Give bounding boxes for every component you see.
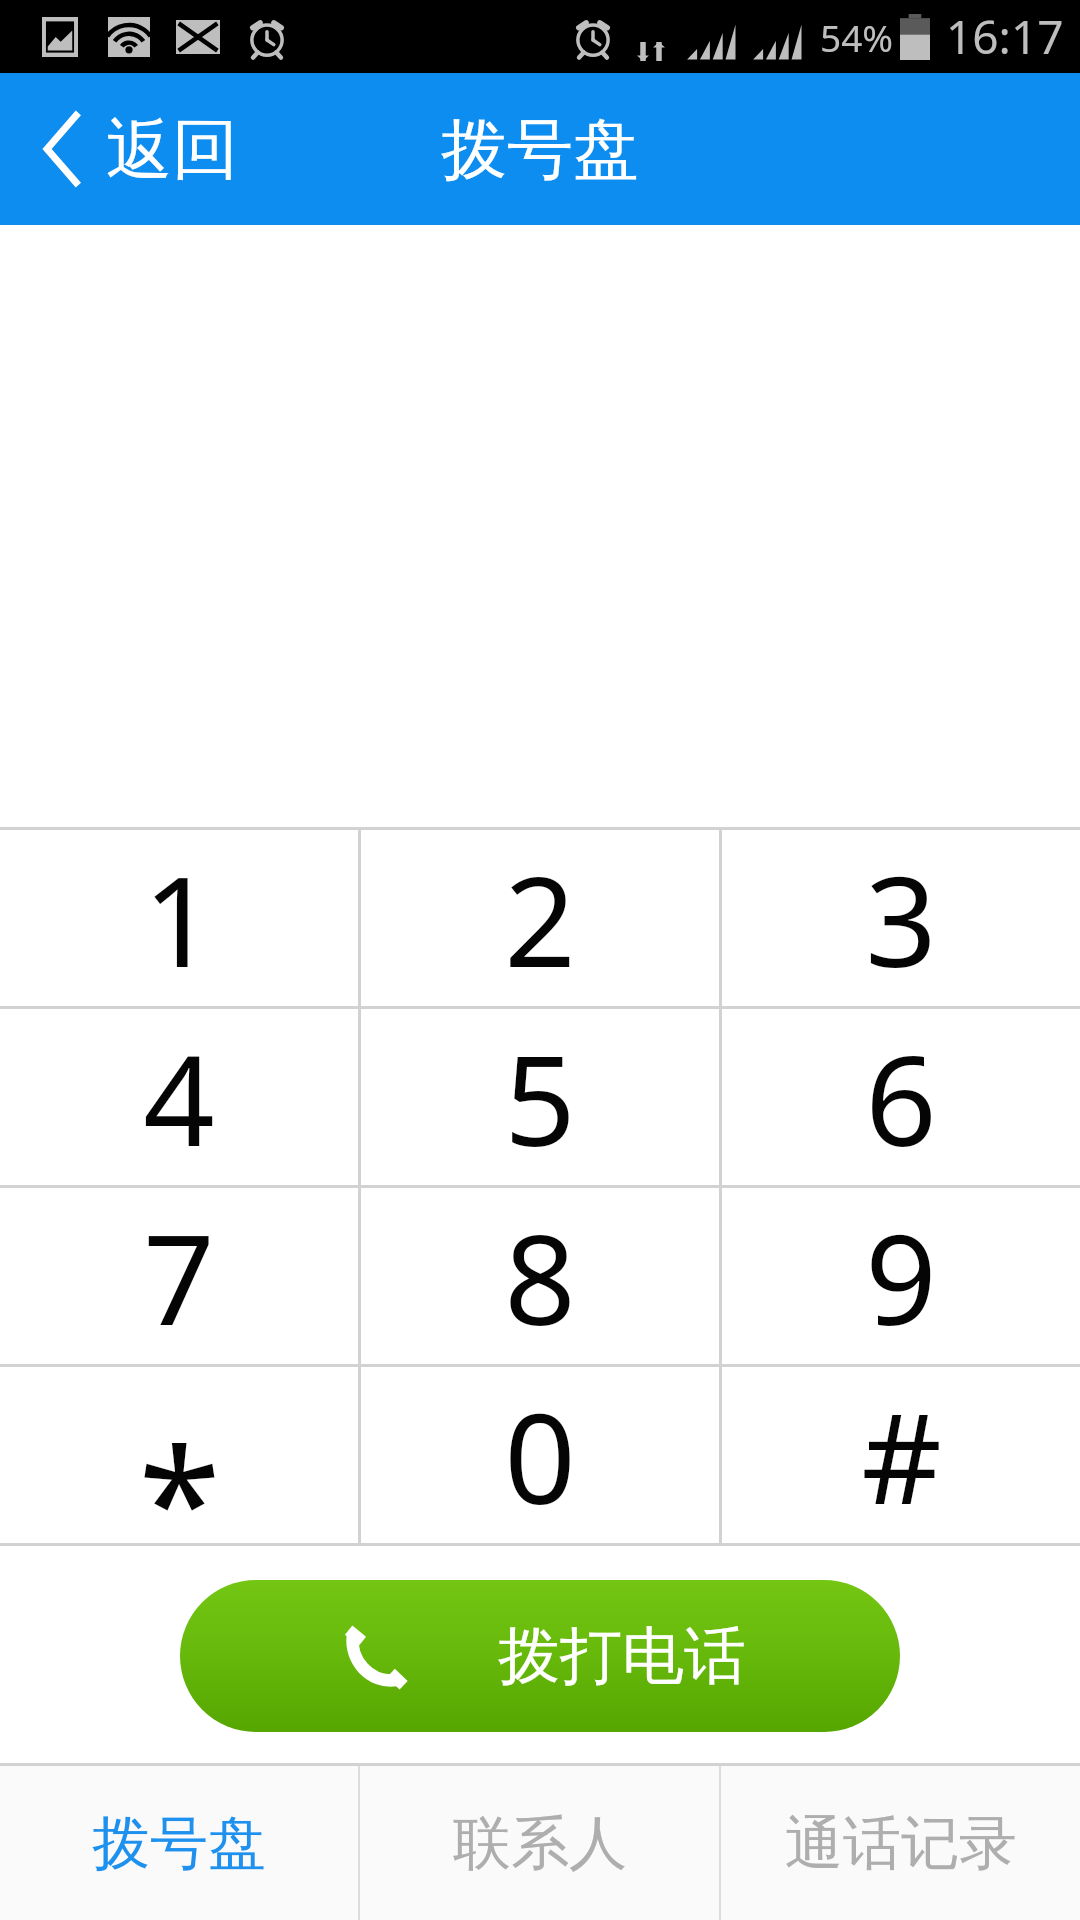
staticText: 9 xyxy=(865,1191,937,1361)
staticText: 拨打电话 xyxy=(498,1617,746,1695)
button[interactable]: 9 xyxy=(722,1188,1080,1364)
staticText: 拨号盘 xyxy=(92,1807,266,1880)
staticText: 联系人 xyxy=(453,1807,627,1880)
staticText: 16:17 xyxy=(946,5,1064,68)
staticText: 返回 xyxy=(106,108,238,191)
staticText: 54% xyxy=(820,12,894,62)
button[interactable]: 5 xyxy=(361,1009,719,1185)
staticText: 2 xyxy=(504,833,576,1003)
button[interactable]: 拨打电话 xyxy=(180,1580,900,1732)
button[interactable]: 通话记录 xyxy=(721,1766,1080,1920)
staticText: # xyxy=(861,1370,942,1540)
staticText: 4 xyxy=(143,1012,215,1182)
staticText: 5 xyxy=(504,1012,576,1182)
button[interactable]: # xyxy=(722,1367,1080,1543)
button[interactable]: 返回 xyxy=(0,73,262,225)
staticText: 3 xyxy=(865,833,937,1003)
button[interactable]: 0 xyxy=(361,1367,719,1543)
staticText: 拨号盘 xyxy=(441,108,639,191)
button[interactable]: * xyxy=(0,1367,358,1543)
staticText: 6 xyxy=(865,1012,937,1182)
staticText: 通话记录 xyxy=(785,1807,1017,1880)
button[interactable]: 6 xyxy=(722,1009,1080,1185)
staticText: 8 xyxy=(504,1191,576,1361)
button[interactable]: 2 xyxy=(361,830,719,1006)
button[interactable]: 8 xyxy=(361,1188,719,1364)
button[interactable]: 拨号盘 xyxy=(0,1766,358,1920)
staticText: 1 xyxy=(143,833,215,1003)
button[interactable]: 1 xyxy=(0,830,358,1006)
button[interactable]: 4 xyxy=(0,1009,358,1185)
button[interactable]: 联系人 xyxy=(360,1766,719,1920)
staticText: 0 xyxy=(504,1370,576,1540)
button[interactable]: 3 xyxy=(722,830,1080,1006)
staticText: 7 xyxy=(143,1191,215,1361)
button[interactable]: 7 xyxy=(0,1188,358,1364)
staticText: * xyxy=(138,1397,221,1573)
